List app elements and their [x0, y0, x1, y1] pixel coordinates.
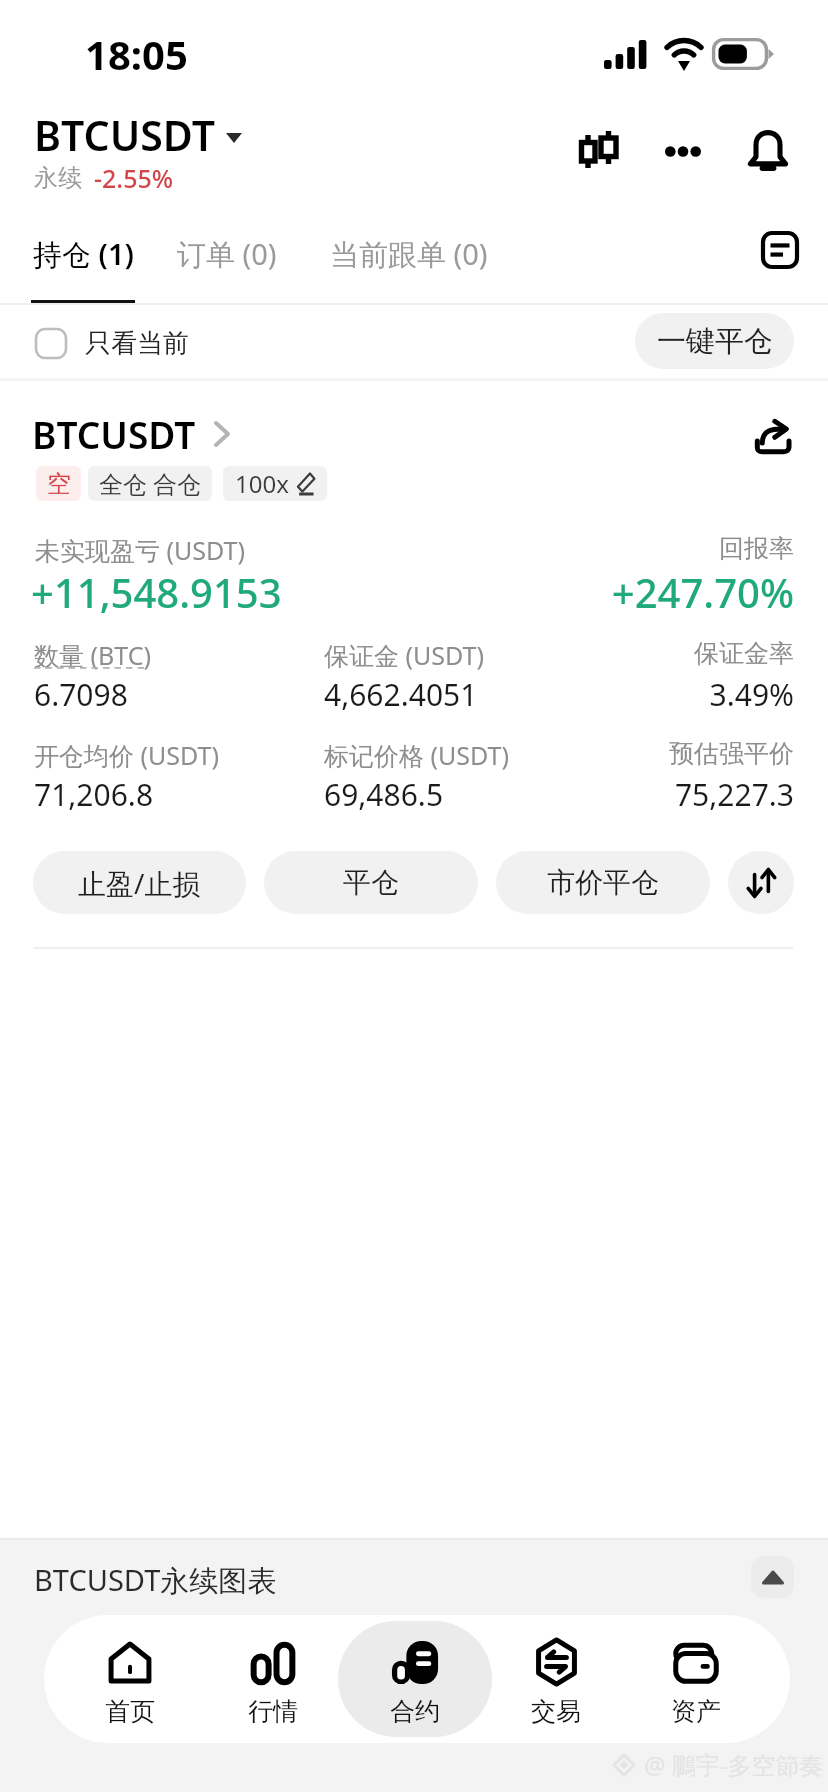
- button[interactable]: 资产: [619, 1621, 773, 1737]
- button[interactable]: 交易: [479, 1621, 633, 1737]
- staticText: 持仓 (1): [33, 234, 134, 274]
- staticText: 合约: [390, 1696, 440, 1727]
- button[interactable]: 止盈/止损: [33, 851, 246, 914]
- button[interactable]: 持仓 (1): [25, 214, 145, 304]
- staticText: 全仓 合仓: [99, 467, 202, 500]
- staticText: +11,548.9153: [31, 565, 282, 619]
- staticText: 行情: [248, 1696, 298, 1727]
- staticText: +247.70%: [0, 565, 794, 619]
- button[interactable]: 行情: [196, 1621, 350, 1737]
- staticText: 预估强平价: [0, 738, 794, 769]
- staticText: @ 鵬宇-多空節奏: [644, 1748, 824, 1781]
- staticText: BTCUSDT永续图表: [34, 1560, 277, 1600]
- staticText: 未实现盈亏 (USDT): [35, 533, 245, 567]
- button[interactable]: Chart: [567, 118, 631, 182]
- button[interactable]: Share: [745, 409, 793, 457]
- button[interactable]: 100x: [223, 466, 327, 501]
- staticText: 保证金率: [0, 638, 794, 669]
- staticText: 永续: [34, 163, 82, 193]
- staticText: 69,486.5: [324, 774, 444, 815]
- button[interactable]: 市价平仓: [496, 851, 710, 914]
- staticText: BTCUSDT: [32, 409, 196, 450]
- button[interactable]: More options: [651, 119, 715, 183]
- button[interactable]: Reverse position: [728, 851, 794, 914]
- button[interactable]: Notifications: [736, 116, 800, 180]
- button[interactable]: 当前跟单 (0): [322, 214, 498, 304]
- staticText: 空: [47, 469, 71, 499]
- button[interactable]: BTCUSDT: [34, 107, 242, 163]
- staticText: 3.49%: [0, 674, 794, 715]
- staticText: 市价平仓: [547, 865, 659, 900]
- staticText: 止盈/止损: [78, 864, 201, 902]
- staticText: 资产: [671, 1696, 721, 1727]
- button[interactable]: BTCUSDT: [24, 398, 230, 450]
- button[interactable]: 合约: [338, 1621, 492, 1737]
- staticText: 75,227.3: [0, 774, 794, 815]
- staticText: 只看当前: [85, 327, 189, 360]
- staticText: 数量 (BTC): [34, 638, 151, 672]
- staticText: BTCUSDT: [34, 107, 215, 163]
- staticText: 订单 (0): [177, 234, 277, 274]
- staticText: -2.55%: [94, 161, 174, 195]
- staticText: 开仓均价 (USDT): [34, 738, 219, 772]
- button[interactable]: 首页: [53, 1621, 207, 1737]
- staticText: 18:05: [85, 27, 188, 81]
- staticText: 回报率: [0, 533, 794, 564]
- staticText: 4,662.4051: [324, 674, 478, 715]
- staticText: 100x: [235, 467, 289, 500]
- button[interactable]: 订单 (0): [169, 214, 291, 304]
- staticText: 一键平仓: [657, 323, 773, 360]
- staticText: 71,206.8: [34, 774, 154, 815]
- staticText: 6.7098: [34, 674, 128, 715]
- button[interactable]: Order records: [752, 222, 808, 278]
- staticText: 交易: [531, 1696, 581, 1727]
- staticText: 首页: [105, 1696, 155, 1727]
- button[interactable]: 平仓: [264, 851, 478, 914]
- button[interactable]: 一键平仓: [635, 313, 794, 369]
- button[interactable]: Expand chart: [751, 1556, 794, 1598]
- staticText: 平仓: [343, 865, 399, 900]
- staticText: 当前跟单 (0): [330, 234, 488, 274]
- button[interactable]: 只看当前: [30, 321, 195, 366]
- staticText: 标记价格 (USDT): [324, 738, 509, 772]
- staticText: 保证金 (USDT): [324, 638, 484, 672]
